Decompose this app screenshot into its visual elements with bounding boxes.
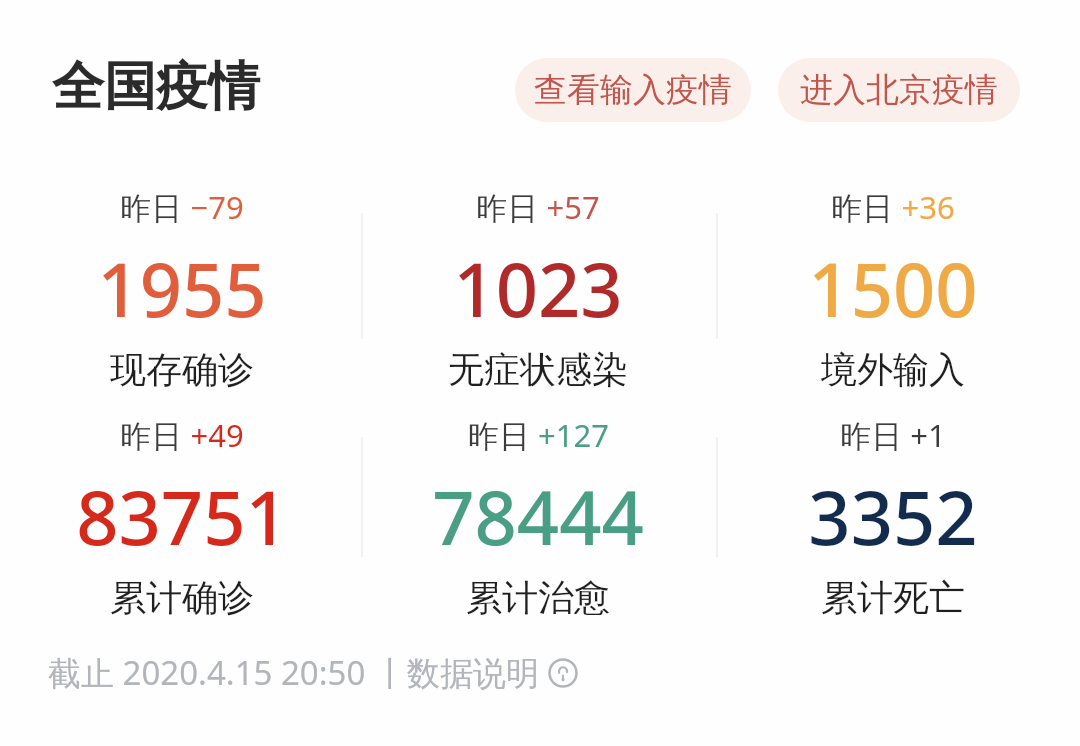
button[interactable]: 昨日 +127	[368, 414, 708, 620]
staticText: 截止 2020.4.15 20:50 丨数据说明	[48, 650, 548, 695]
staticText: 昨日 +1	[840, 414, 946, 456]
staticText: 3352	[808, 466, 978, 567]
button[interactable]: 进入北京疫情	[778, 58, 1020, 122]
button[interactable]: 截止 2020.4.15 20:50 丨数据说明	[48, 650, 578, 695]
button[interactable]: 昨日 +36	[723, 186, 1063, 392]
staticText: 昨日 +57	[476, 186, 600, 228]
staticText: 83751	[76, 466, 288, 567]
staticText: 全国疫情	[52, 54, 260, 120]
staticText: 昨日 +127	[468, 414, 609, 456]
staticText: 昨日 +49	[120, 414, 244, 456]
button[interactable]: 昨日 −79	[12, 186, 352, 392]
staticText: 昨日 +36	[831, 186, 955, 228]
button[interactable]: 全国疫情	[52, 54, 260, 120]
staticText: 境外输入	[821, 347, 965, 392]
staticText: 累计确诊	[110, 575, 254, 620]
button[interactable]: 昨日 +49	[12, 414, 352, 620]
other: 数据说明帮助	[548, 658, 578, 688]
button[interactable]: 昨日 +1	[723, 414, 1063, 620]
staticText: 1955	[97, 238, 267, 339]
staticText: 78444	[432, 466, 644, 567]
staticText: 1023	[453, 238, 623, 339]
staticText: 累计死亡	[821, 575, 965, 620]
staticText: 进入北京疫情	[800, 69, 998, 111]
staticText: 累计治愈	[466, 575, 610, 620]
staticText: 查看输入疫情	[534, 69, 732, 111]
button[interactable]: 昨日 +57	[368, 186, 708, 392]
staticText: 1500	[808, 238, 978, 339]
staticText: 无症状感染	[448, 347, 628, 392]
staticText: 现存确诊	[110, 347, 254, 392]
staticText: 昨日 −79	[120, 186, 244, 228]
button[interactable]: 查看输入疫情	[515, 58, 751, 122]
